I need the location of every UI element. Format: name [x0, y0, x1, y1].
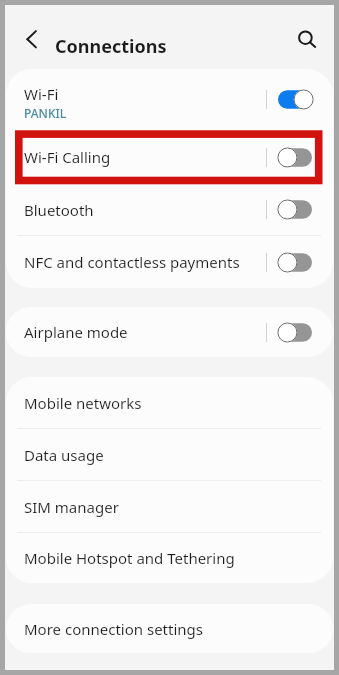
- button[interactable]: Turn on: [278, 147, 312, 168]
- button[interactable]: Bluetooth: [6, 184, 333, 235]
- button[interactable]: Search: [291, 27, 326, 61]
- button[interactable]: Mobile networks: [6, 377, 333, 428]
- staticText: SIM manager: [24, 497, 119, 517]
- button[interactable]: Turn on: [278, 322, 312, 343]
- staticText: Airplane mode: [24, 322, 128, 342]
- staticText: Data usage: [24, 445, 104, 465]
- staticText: Mobile Hotspot and Tethering: [24, 548, 235, 568]
- button[interactable]: Turn on: [278, 252, 312, 273]
- button[interactable]: SIM manager: [6, 481, 333, 532]
- button[interactable]: Back: [19, 27, 54, 61]
- button[interactable]: Data usage: [6, 429, 333, 480]
- button[interactable]: Wi-Fi: [6, 69, 333, 130]
- button[interactable]: Turn off: [278, 89, 312, 110]
- staticText: NFC and contactless payments: [24, 252, 240, 272]
- staticText: Wi-Fi: [24, 84, 59, 104]
- button[interactable]: Mobile Hotspot and Tethering: [6, 533, 333, 583]
- button[interactable]: Turn on: [278, 199, 312, 220]
- button[interactable]: Wi-Fi Calling: [6, 131, 333, 183]
- staticText: PANKIL: [24, 105, 67, 121]
- button[interactable]: Airplane mode: [6, 307, 333, 357]
- staticText: Wi-Fi Calling: [24, 147, 111, 167]
- staticText: Connections: [55, 34, 167, 59]
- button[interactable]: More connection settings: [6, 604, 333, 653]
- staticText: More connection settings: [24, 619, 203, 639]
- staticText: Bluetooth: [24, 200, 94, 220]
- staticText: Mobile networks: [24, 393, 142, 413]
- button[interactable]: NFC and contactless payments: [6, 236, 333, 288]
